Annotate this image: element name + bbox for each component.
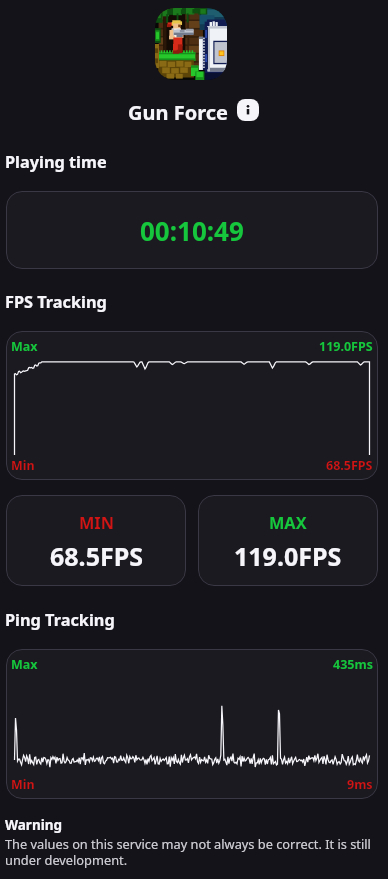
staticText: The values on this service may not alway… <box>5 835 378 869</box>
staticText: MIN <box>79 512 114 534</box>
staticText: MAX <box>269 512 307 534</box>
staticText: 119.0FPS <box>234 539 342 573</box>
staticText: 435ms <box>333 656 373 673</box>
staticText: 00:10:49 <box>140 213 244 248</box>
staticText: Warning <box>5 816 63 834</box>
staticText: Ping Tracking <box>5 609 115 631</box>
staticText: FPS Tracking <box>5 291 107 313</box>
staticText: Min <box>11 776 35 793</box>
staticText: Gun Force <box>128 99 228 121</box>
staticText: 119.0FPS <box>319 338 373 355</box>
button[interactable]: MAX <box>198 495 378 586</box>
staticText: Playing time <box>5 151 107 173</box>
staticText: Max <box>11 338 38 355</box>
button[interactable]: Information <box>237 99 259 121</box>
staticText: 9ms <box>347 776 373 793</box>
staticText: Min <box>11 457 35 474</box>
button[interactable]: MIN <box>6 495 186 586</box>
staticText: 68.5FPS <box>326 457 373 474</box>
staticText: Max <box>11 656 38 673</box>
staticText: 68.5FPS <box>50 539 143 573</box>
